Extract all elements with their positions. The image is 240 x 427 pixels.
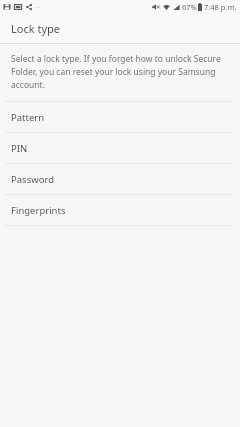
staticText: PIN — [11, 142, 28, 155]
button[interactable]: Pattern — [0, 102, 240, 132]
staticText: Select a lock type. If you forget how to… — [11, 53, 231, 91]
staticText: ··· — [35, 3, 40, 11]
staticText: Fingerprints — [11, 204, 66, 217]
button[interactable]: Password — [0, 164, 240, 194]
staticText: Pattern — [11, 111, 45, 124]
staticText: Password — [11, 173, 54, 186]
button[interactable]: PIN — [0, 133, 240, 163]
staticText: 67% — [182, 2, 197, 12]
button[interactable]: Fingerprints — [0, 195, 240, 225]
staticText: 7:48 p.m. — [204, 2, 237, 12]
staticText: Lock type — [11, 21, 60, 36]
